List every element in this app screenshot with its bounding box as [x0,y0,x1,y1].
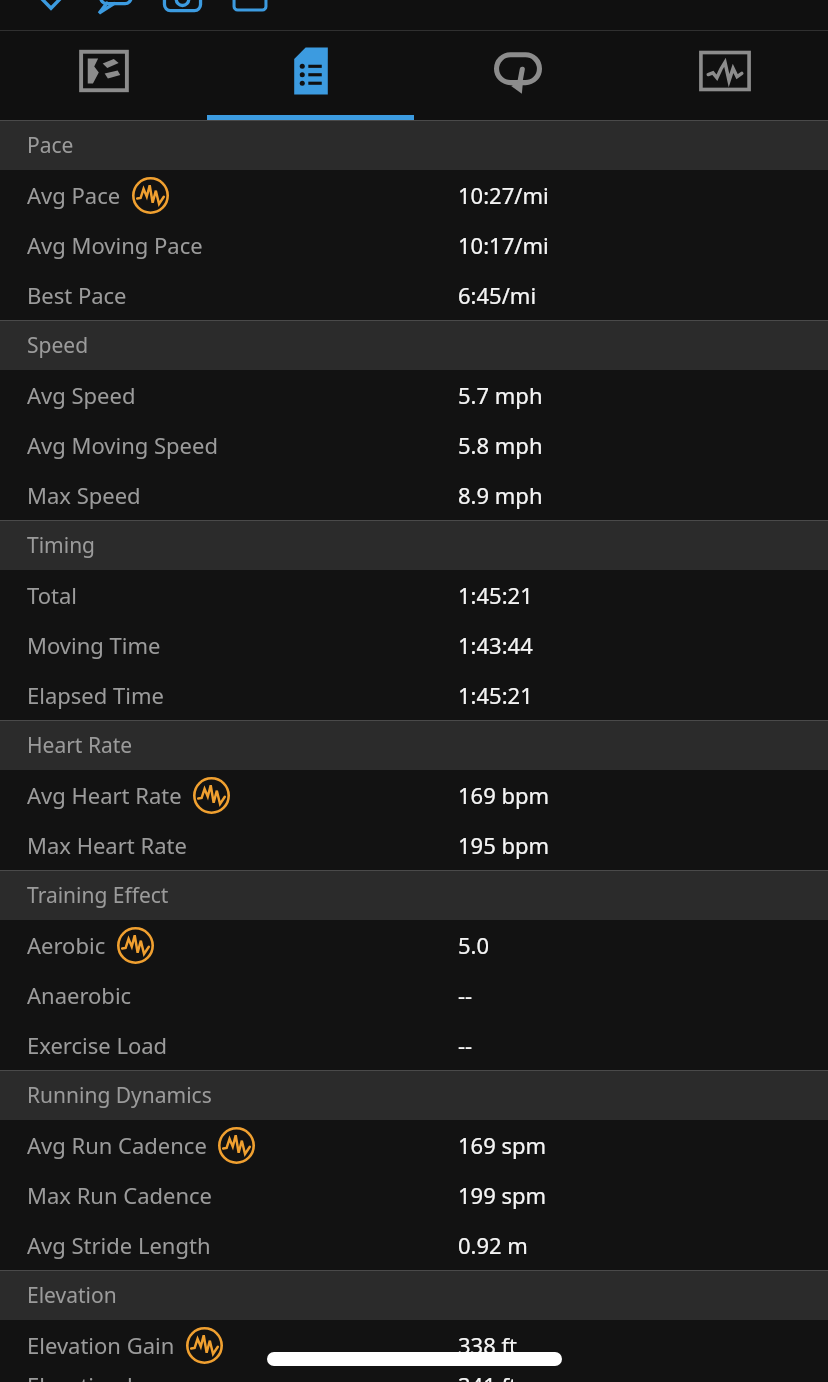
staticText: 5.7 mph [458,380,543,410]
staticText: Total [27,580,77,610]
staticText: Speed [27,331,89,360]
staticText: Best Pace [27,280,127,310]
staticText: Heart Rate [27,731,133,760]
button[interactable]: Elevation Gain [0,1320,828,1370]
staticText: Exercise Load [27,1030,168,1060]
staticText: 8.9 mph [458,480,543,510]
staticText: Avg Heart Rate [27,780,182,810]
staticText: Max Speed [27,480,141,510]
staticText: Elevation [27,1281,117,1310]
staticText: 199 spm [458,1180,547,1210]
button[interactable]: Avg Moving Pace [0,220,828,270]
button[interactable]: Charts [621,31,828,120]
button[interactable]: Total [0,570,828,620]
staticText: Running Dynamics [27,1081,212,1110]
staticText: Max Heart Rate [27,830,187,860]
staticText: Elevation Gain [27,1330,175,1360]
button[interactable]: Avg Pace [0,170,828,220]
button[interactable]: Anaerobic [0,970,828,1020]
staticText: Timing [27,531,96,560]
button[interactable]: Elapsed Time [0,670,828,720]
button[interactable]: Elevation Loss [0,1370,828,1382]
staticText: 341 ft [458,1370,517,1382]
staticText: Training Effect [27,881,169,910]
staticText: Max Run Cadence [27,1180,212,1210]
staticText: 10:27/mi [458,180,549,210]
staticText: Avg Moving Speed [27,430,218,460]
button[interactable]: Avg Stride Length [0,1220,828,1270]
button[interactable]: Max Run Cadence [0,1170,828,1220]
button[interactable]: Moving Time [0,620,828,670]
staticText: Avg Speed [27,380,136,410]
staticText: 338 ft [458,1330,517,1360]
staticText: 5.8 mph [458,430,543,460]
button[interactable]: Exercise Load [0,1020,828,1070]
staticText: -- [458,980,473,1010]
staticText: 1:45:21 [458,680,533,710]
staticText: Avg Run Cadence [27,1130,207,1160]
button[interactable]: Avg Speed [0,370,828,420]
staticText: Aerobic [27,930,106,960]
staticText: -- [458,1030,473,1060]
button[interactable]: Max Speed [0,470,828,520]
staticText: 0.92 m [458,1230,528,1260]
staticText: 6:45/mi [458,280,537,310]
staticText: Pace [27,131,74,160]
button[interactable]: Details [207,31,414,120]
button[interactable]: Avg Heart Rate [0,770,828,820]
staticText: Anaerobic [27,980,132,1010]
staticText: 10:17/mi [458,230,549,260]
staticText: 1:45:21 [458,580,533,610]
staticText: 195 bpm [458,830,550,860]
button[interactable]: Avg Run Cadence [0,1120,828,1170]
button[interactable]: Aerobic [0,920,828,970]
staticText: Elapsed Time [27,680,164,710]
button[interactable]: Best Pace [0,270,828,320]
staticText: 169 bpm [458,780,550,810]
staticText: Avg Pace [27,180,121,210]
staticText: Avg Stride Length [27,1230,211,1260]
staticText: 169 spm [458,1130,547,1160]
staticText: Moving Time [27,630,161,660]
button[interactable]: Avg Moving Speed [0,420,828,470]
staticText: 1:43:44 [458,630,533,660]
button[interactable]: Laps [414,31,621,120]
staticText: Elevation Loss [27,1370,173,1382]
button[interactable]: Max Heart Rate [0,820,828,870]
staticText: Avg Moving Pace [27,230,203,260]
button[interactable]: Map [0,31,207,120]
staticText: 5.0 [458,930,490,960]
